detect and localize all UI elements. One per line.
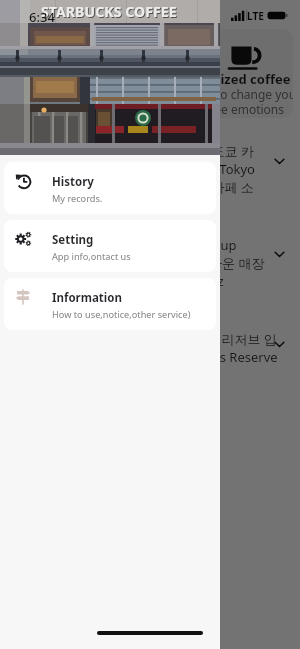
staticText: My records.	[52, 192, 103, 205]
staticText: History	[52, 174, 94, 190]
button[interactable]: Personalized coffee	[7, 29, 293, 118]
button[interactable]: 스타벅스 리저브 입	[0, 330, 300, 382]
staticText: Starbucks Reserve	[166, 348, 278, 366]
button[interactable]: 스타벅스 도쿄 카	[0, 142, 300, 194]
staticText: Personalized coffee	[164, 70, 291, 88]
button[interactable]: Setting	[4, 220, 216, 272]
staticText: 스타벅스 도쿄 카	[156, 142, 254, 160]
staticText: Tap to change your coffee emotions	[193, 86, 293, 117]
staticText: STARBUCKS COFFEE	[41, 2, 177, 21]
staticText: Information	[52, 290, 122, 306]
button[interactable]: Information	[4, 278, 216, 330]
staticText: Starbucks Tokyo	[156, 160, 255, 178]
staticText: Setting	[52, 232, 94, 248]
staticText: Pickup	[196, 236, 237, 254]
staticText: Quiz	[196, 272, 224, 288]
staticText: LTE	[247, 9, 264, 23]
button[interactable]: Pickup	[0, 236, 300, 288]
staticText: How to use,notice,other service)	[52, 308, 191, 321]
staticText: 6:34	[29, 8, 55, 26]
staticText: STARBUCKS COFFEE	[42, 3, 178, 22]
staticText: 가까운 매장	[196, 254, 265, 272]
staticText: App info,ontact us	[52, 250, 131, 263]
staticText: 로스터리 카페 소	[156, 178, 254, 194]
button[interactable]: History	[4, 162, 216, 214]
staticText: 스타벅스 리저브 입	[166, 330, 277, 348]
